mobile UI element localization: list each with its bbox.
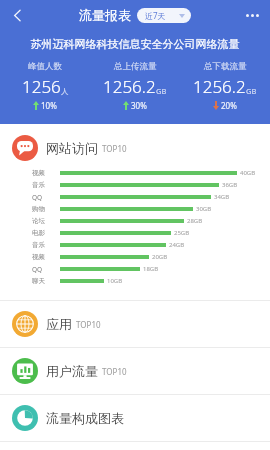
staticText: 25GB (174, 229, 190, 237)
staticText: 论坛 (32, 217, 56, 225)
staticText: 1256.2 (103, 75, 156, 98)
staticText: 音乐 (32, 181, 56, 189)
staticText: 流量构成图表 (46, 410, 124, 426)
staticText: 20% (221, 100, 237, 111)
button[interactable]: 用户流量 (0, 348, 270, 394)
button[interactable]: 流量构成图表 (0, 395, 270, 441)
staticText: 视频 (32, 169, 56, 177)
staticText: 1256 (22, 75, 61, 98)
staticText: 电影 (32, 229, 56, 237)
staticText: GB (246, 86, 257, 96)
staticText: 苏州迈科网络科技信息安全分公司网络流量 (0, 37, 270, 51)
staticText: TOP10 (102, 143, 127, 154)
staticText: QQ (32, 265, 56, 274)
staticText: 近7天 (145, 10, 166, 21)
staticText: 24GB (169, 241, 185, 249)
staticText: 34GB (214, 193, 230, 201)
staticText: 20GB (152, 253, 168, 261)
button[interactable]: 近7天 (137, 8, 191, 23)
staticText: 音乐 (32, 241, 56, 249)
staticText: GB (156, 86, 167, 96)
staticText: 30% (131, 100, 147, 111)
staticText: 30GB (196, 205, 212, 213)
staticText: 总下载流量 (204, 61, 247, 72)
staticText: 流量报表 (79, 7, 131, 23)
staticText: 人 (61, 87, 69, 96)
staticText: 视频 (32, 253, 56, 261)
staticText: 总上传流量 (114, 61, 157, 72)
staticText: 峰值人数 (28, 61, 62, 72)
button[interactable]: 网站访问 (0, 124, 270, 164)
staticText: 购物 (32, 205, 56, 213)
staticText: 用户流量 (46, 363, 98, 379)
staticText: 10GB (107, 277, 123, 285)
staticText: 10% (41, 100, 57, 111)
button[interactable]: More options (238, 1, 266, 29)
staticText: 网站访问 (46, 140, 98, 156)
staticText: 聊天 (32, 277, 56, 285)
staticText: 28GB (187, 217, 203, 225)
staticText: TOP10 (76, 319, 101, 330)
staticText: TOP10 (102, 366, 127, 377)
button[interactable]: 应用 (0, 301, 270, 347)
staticText: 1256.2 (193, 75, 246, 98)
staticText: 应用 (46, 316, 72, 332)
button[interactable]: Back (3, 1, 31, 29)
staticText: 36GB (222, 181, 238, 189)
staticText: 40GB (240, 169, 256, 177)
staticText: QQ (32, 193, 56, 202)
staticText: 18GB (143, 265, 159, 273)
